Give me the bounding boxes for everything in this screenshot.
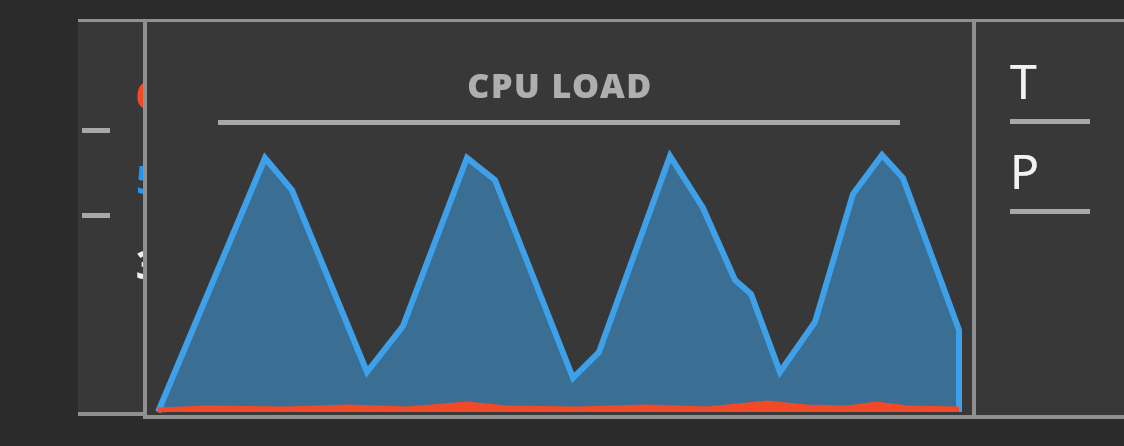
staticText: 3 [136, 236, 159, 290]
staticText: P [1010, 138, 1040, 203]
button[interactable]: System stats panel [78, 20, 143, 416]
button[interactable]: Temperature panel [976, 22, 1124, 416]
staticText: CPU LOAD [467, 62, 653, 108]
staticText: T [1010, 48, 1037, 113]
staticText: 5 [136, 151, 159, 205]
button[interactable]: CPU LOAD [147, 22, 972, 416]
staticText: 6 [136, 66, 159, 120]
